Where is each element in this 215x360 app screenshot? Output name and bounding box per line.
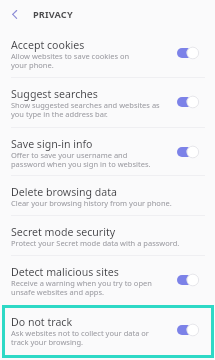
button[interactable]: Toggle: [177, 95, 199, 109]
staticText: Clear your browsing history from your ph…: [11, 198, 172, 208]
staticText: Save sign-in info: [11, 137, 93, 151]
staticText: Secret mode security: [11, 225, 116, 239]
staticText: Receive a warning when you try to open u…: [11, 278, 152, 297]
button[interactable]: Do not track: [2, 305, 214, 358]
button[interactable]: Accept cookies: [0, 28, 215, 77]
button[interactable]: Toggle: [177, 46, 199, 60]
staticText: Delete browsing data: [11, 185, 118, 199]
staticText: Suggest searches: [11, 87, 98, 101]
button[interactable]: Delete browsing data: [0, 175, 215, 215]
button[interactable]: Detect malicious sites: [0, 255, 215, 304]
staticText: Do not track: [11, 315, 73, 329]
button[interactable]: Save sign-in info: [0, 127, 215, 176]
button[interactable]: Suggest searches: [0, 77, 215, 126]
staticText: Allow websites to save cookies on your p…: [11, 51, 130, 70]
staticText: Accept cookies: [11, 38, 85, 52]
staticText: Protect your Secret mode data with a pas…: [11, 238, 180, 248]
button[interactable]: Toggle: [177, 323, 199, 337]
staticText: Ask websites not to collect your data or…: [11, 328, 149, 347]
button[interactable]: Toggle: [177, 145, 199, 159]
button[interactable]: Toggle: [177, 273, 199, 287]
staticText: PRIVACY: [33, 8, 73, 21]
button[interactable]: Back: [0, 0, 27, 28]
staticText: Detect malicious sites: [11, 265, 119, 279]
button[interactable]: Secret mode security: [0, 215, 215, 255]
staticText: Show suggested searches and websites as …: [11, 100, 160, 119]
staticText: Offer to save your username and password…: [11, 150, 151, 169]
